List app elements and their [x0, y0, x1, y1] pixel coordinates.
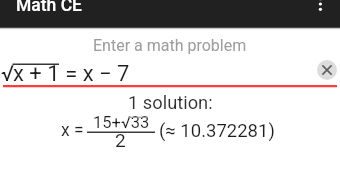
staticText: Enter a math problem — [93, 36, 247, 55]
staticText: (≈ 10.372281) — [159, 120, 275, 142]
staticText: 1 solution: — [128, 92, 213, 113]
staticText: Math CE — [16, 0, 82, 16]
staticText: 15+√33 — [93, 113, 150, 132]
staticText: √ — [1, 61, 15, 87]
button[interactable]: Math problem input — [0, 56, 340, 88]
button[interactable]: Clear — [317, 60, 337, 80]
button[interactable]: More options — [308, 0, 334, 13]
staticText: 2 — [115, 129, 126, 151]
staticText: x + 1 = x − 7 — [13, 61, 130, 87]
staticText: x = — [61, 120, 84, 141]
